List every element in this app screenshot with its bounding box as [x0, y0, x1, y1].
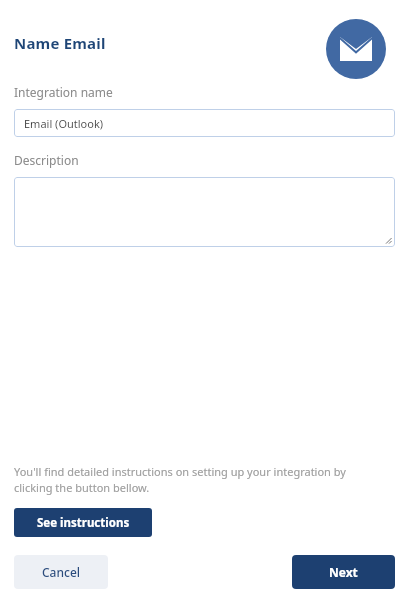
- staticText: Cancel: [42, 564, 81, 580]
- staticText: Email (Outlook): [24, 116, 104, 131]
- button[interactable]: Email integration: [326, 19, 386, 79]
- staticText: Next: [329, 564, 358, 580]
- staticText: Name Email: [14, 33, 106, 53]
- staticText: Description: [14, 152, 79, 168]
- button[interactable]: Email (Outlook): [14, 109, 395, 137]
- staticText: Integration name: [14, 84, 113, 100]
- staticText: See instructions: [37, 515, 130, 531]
- staticText: You'll find detailed instructions on set…: [14, 464, 383, 495]
- button[interactable]: See instructions: [14, 508, 152, 537]
- button[interactable]: Cancel: [14, 555, 108, 589]
- button[interactable]: Next: [292, 555, 395, 589]
- button[interactable]: [14, 177, 395, 247]
